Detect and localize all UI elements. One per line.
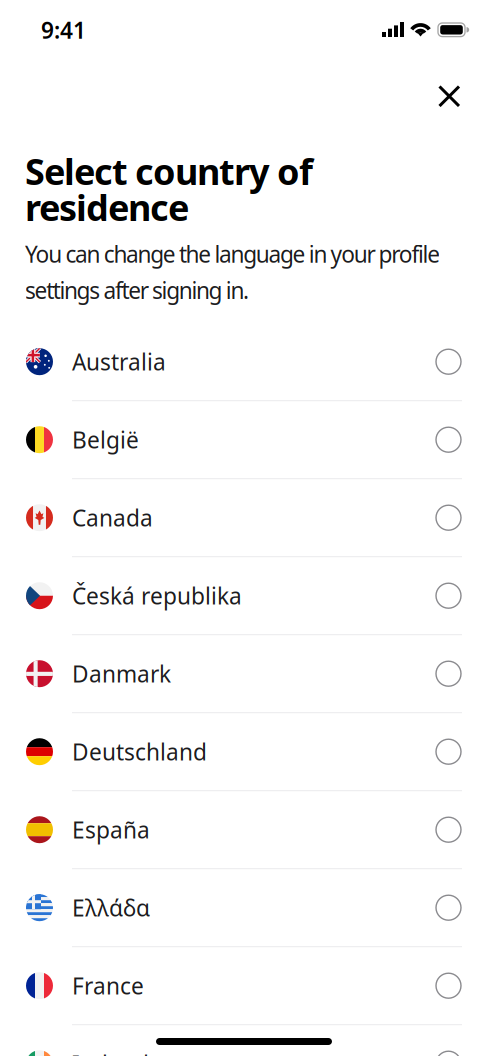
staticText: residence bbox=[25, 183, 189, 231]
staticText: Canada bbox=[72, 503, 153, 533]
button[interactable]: Ελλάδα bbox=[0, 869, 488, 946]
staticText: België bbox=[72, 425, 139, 455]
staticText: Deutschland bbox=[72, 737, 207, 767]
button[interactable]: España bbox=[0, 791, 488, 868]
staticText: Česká republika bbox=[72, 581, 242, 611]
button[interactable]: Česká republika bbox=[0, 557, 488, 634]
staticText: Select country of bbox=[25, 147, 313, 195]
staticText: España bbox=[72, 815, 150, 845]
button[interactable]: Australia bbox=[0, 323, 488, 400]
staticText: France bbox=[72, 971, 144, 1001]
button[interactable]: België bbox=[0, 401, 488, 478]
button[interactable]: Canada bbox=[0, 479, 488, 556]
staticText: 9:41 bbox=[41, 15, 86, 45]
button[interactable]: Ireland bbox=[0, 1025, 488, 1056]
staticText: Ireland bbox=[72, 1049, 149, 1056]
staticText: You can change the language in your prof… bbox=[25, 239, 440, 269]
button[interactable]: France bbox=[0, 947, 488, 1024]
staticText: Ελλάδα bbox=[72, 893, 150, 923]
button[interactable]: Close bbox=[426, 73, 472, 119]
staticText: settings after signing in. bbox=[25, 275, 249, 305]
staticText: Danmark bbox=[72, 659, 171, 689]
button[interactable]: Deutschland bbox=[0, 713, 488, 790]
staticText: Australia bbox=[72, 347, 166, 377]
button[interactable]: Danmark bbox=[0, 635, 488, 712]
